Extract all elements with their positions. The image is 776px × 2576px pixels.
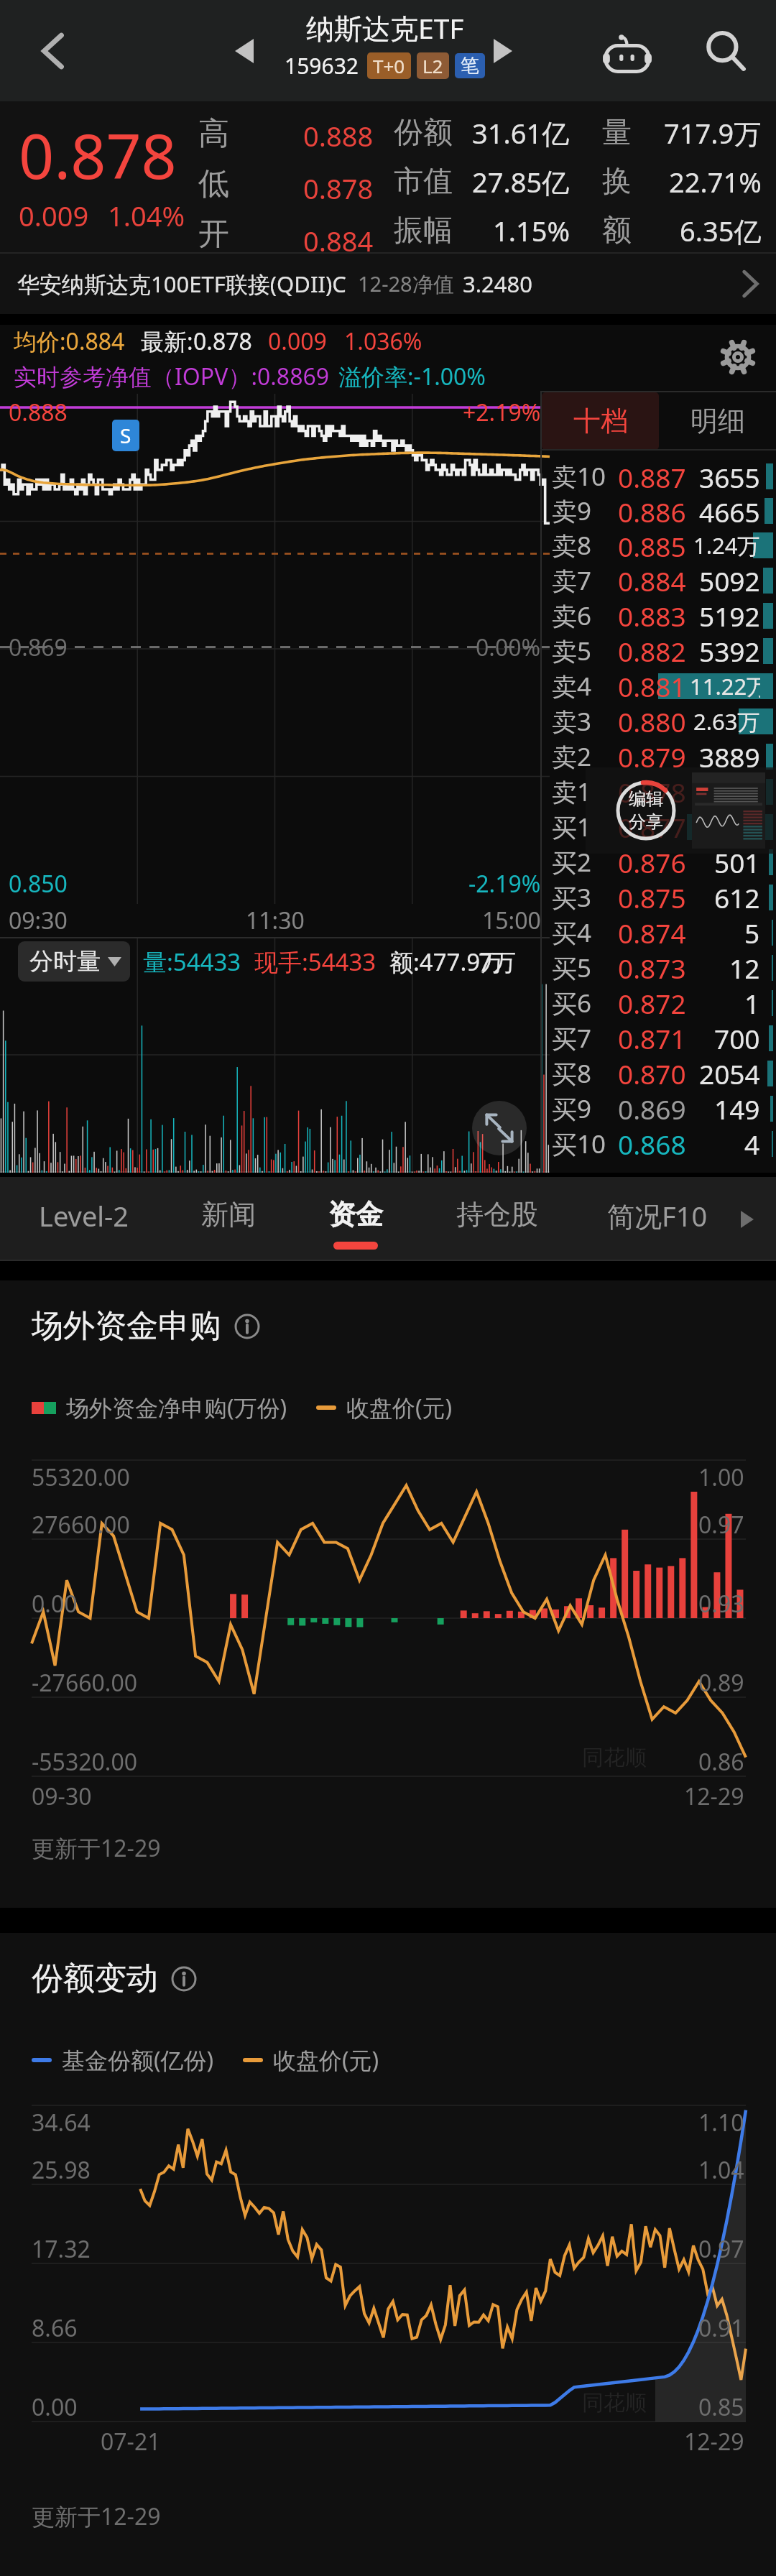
button[interactable]: 买8 xyxy=(542,1056,776,1091)
staticText: 0.871 xyxy=(618,1020,690,1056)
button[interactable]: 卖10 xyxy=(542,459,776,494)
button[interactable]: Chart settings xyxy=(713,332,763,382)
staticText: 卖1 xyxy=(552,775,618,809)
button[interactable]: Search xyxy=(690,15,762,87)
staticText: 12-28净值 xyxy=(358,269,454,298)
staticText: 买7 xyxy=(552,1021,618,1056)
staticText: 31.61亿 xyxy=(472,114,570,152)
staticText: 振幅 xyxy=(394,212,453,249)
staticText: 1.10 xyxy=(698,2107,744,2138)
staticText: 11.22万 xyxy=(690,671,760,701)
button[interactable]: Level-2 xyxy=(27,1190,141,1260)
staticText: 0.009 xyxy=(19,197,89,234)
button[interactable]: 买1 xyxy=(542,809,776,844)
button[interactable]: AI assistant xyxy=(591,15,663,87)
button[interactable]: 买9 xyxy=(542,1091,776,1126)
button[interactable]: Edit and share screenshot xyxy=(586,767,776,854)
staticText: 分享 xyxy=(629,811,663,833)
button[interactable]: 卖8 xyxy=(542,528,776,563)
staticText: 0.868 xyxy=(618,1126,690,1161)
staticText: 份额变动 xyxy=(32,1959,158,1998)
button[interactable]: 资金 xyxy=(317,1190,394,1257)
button[interactable]: 买3 xyxy=(542,880,776,915)
button[interactable]: 卖9 xyxy=(542,494,776,528)
staticText: 同花顺 xyxy=(582,2389,647,2416)
staticText: 0.85 xyxy=(698,2391,744,2423)
staticText: 0.878 xyxy=(618,774,690,809)
staticText: 1.24万 xyxy=(693,530,760,560)
button[interactable]: 买7 xyxy=(542,1020,776,1056)
staticText: 换 xyxy=(602,163,632,200)
button[interactable]: 卖3 xyxy=(542,703,776,739)
staticText: 5 xyxy=(744,915,760,950)
staticText: 0.00 xyxy=(32,1588,78,1620)
button[interactable]: 买6 xyxy=(542,985,776,1020)
staticText: 0.870 xyxy=(618,1056,690,1091)
staticText: 场外资金净申购(万份) xyxy=(66,1392,287,1423)
staticText: -27660.00 xyxy=(32,1667,138,1699)
staticText: 买1 xyxy=(552,810,618,844)
staticText: 149 xyxy=(714,1091,760,1126)
button[interactable]: 简况F10 xyxy=(596,1190,719,1260)
staticText: 2.63万 xyxy=(693,706,760,737)
button[interactable]: 买5 xyxy=(542,950,776,985)
staticText: 收盘价(元) xyxy=(273,2044,379,2076)
staticText: 0.887 xyxy=(618,459,690,494)
button[interactable]: 卖4 xyxy=(542,668,776,703)
button[interactable]: Fullscreen chart xyxy=(472,1101,527,1155)
staticText: 0.884 xyxy=(303,222,374,252)
staticText: 场外资金申购 xyxy=(32,1306,221,1346)
staticText: 均价:0.884 xyxy=(14,326,125,357)
button[interactable]: 买4 xyxy=(542,915,776,950)
staticText: 2054 xyxy=(699,1056,760,1091)
button[interactable]: 分时量 xyxy=(18,941,130,982)
button[interactable]: 卖2 xyxy=(542,739,776,774)
staticText: 0.00 xyxy=(32,2391,78,2423)
staticText: 4417 xyxy=(699,774,760,809)
staticText: 3889 xyxy=(699,739,760,774)
button[interactable]: Previous stock xyxy=(216,22,273,80)
staticText: 17.32 xyxy=(32,2233,91,2265)
staticText: 09-30 xyxy=(32,1781,92,1812)
staticText: 0.86 xyxy=(698,1746,744,1778)
button[interactable]: 华安纳斯达克100ETF联接(QDII)C xyxy=(0,254,776,314)
button[interactable]: 卖5 xyxy=(542,633,776,668)
staticText: 0.876 xyxy=(618,844,690,880)
staticText: 0.872 xyxy=(618,985,690,1020)
button[interactable]: 买2 xyxy=(542,844,776,880)
button[interactable]: 买10 xyxy=(542,1126,776,1161)
button[interactable]: More tabs xyxy=(729,1201,766,1238)
staticText: 0.874 xyxy=(618,915,690,950)
button[interactable]: 新闻 xyxy=(190,1190,267,1257)
staticText: 买2 xyxy=(552,845,618,880)
staticText: 收盘价(元) xyxy=(346,1392,453,1423)
staticText: 额 xyxy=(602,212,632,249)
button[interactable]: 明细 xyxy=(659,392,776,450)
button[interactable]: 持仓股 xyxy=(445,1190,550,1257)
staticText: 0.881 xyxy=(618,668,690,703)
staticText: 0.97 xyxy=(698,2233,744,2265)
button[interactable]: 卖6 xyxy=(542,598,776,633)
staticText: 明细 xyxy=(690,404,745,438)
staticText: 717.9万 xyxy=(664,114,762,152)
staticText: 0.875 xyxy=(618,880,690,915)
staticText: 12-29 xyxy=(684,2426,744,2457)
staticText: 159632 xyxy=(285,51,359,80)
staticText: 0.873 xyxy=(618,950,690,985)
staticText: 买3 xyxy=(552,880,618,915)
button[interactable]: Next stock xyxy=(474,22,532,80)
staticText: 现手:54433 xyxy=(254,946,377,978)
button[interactable]: 十档 xyxy=(542,392,659,450)
staticText: 0.878 xyxy=(303,170,374,207)
staticText: -55320.00 xyxy=(32,1746,138,1778)
button[interactable]: Back xyxy=(14,11,93,91)
staticText: 低 xyxy=(198,165,229,203)
button[interactable]: 卖7 xyxy=(542,563,776,598)
staticText: -2.19% xyxy=(468,868,541,900)
staticText: 0.869 xyxy=(618,1091,690,1126)
staticText: 持仓股 xyxy=(456,1197,538,1232)
button[interactable]: 卖1 xyxy=(542,774,776,809)
staticText: 12 xyxy=(729,950,760,985)
staticText: 0.883 xyxy=(618,598,690,633)
staticText: 买4 xyxy=(552,915,618,950)
